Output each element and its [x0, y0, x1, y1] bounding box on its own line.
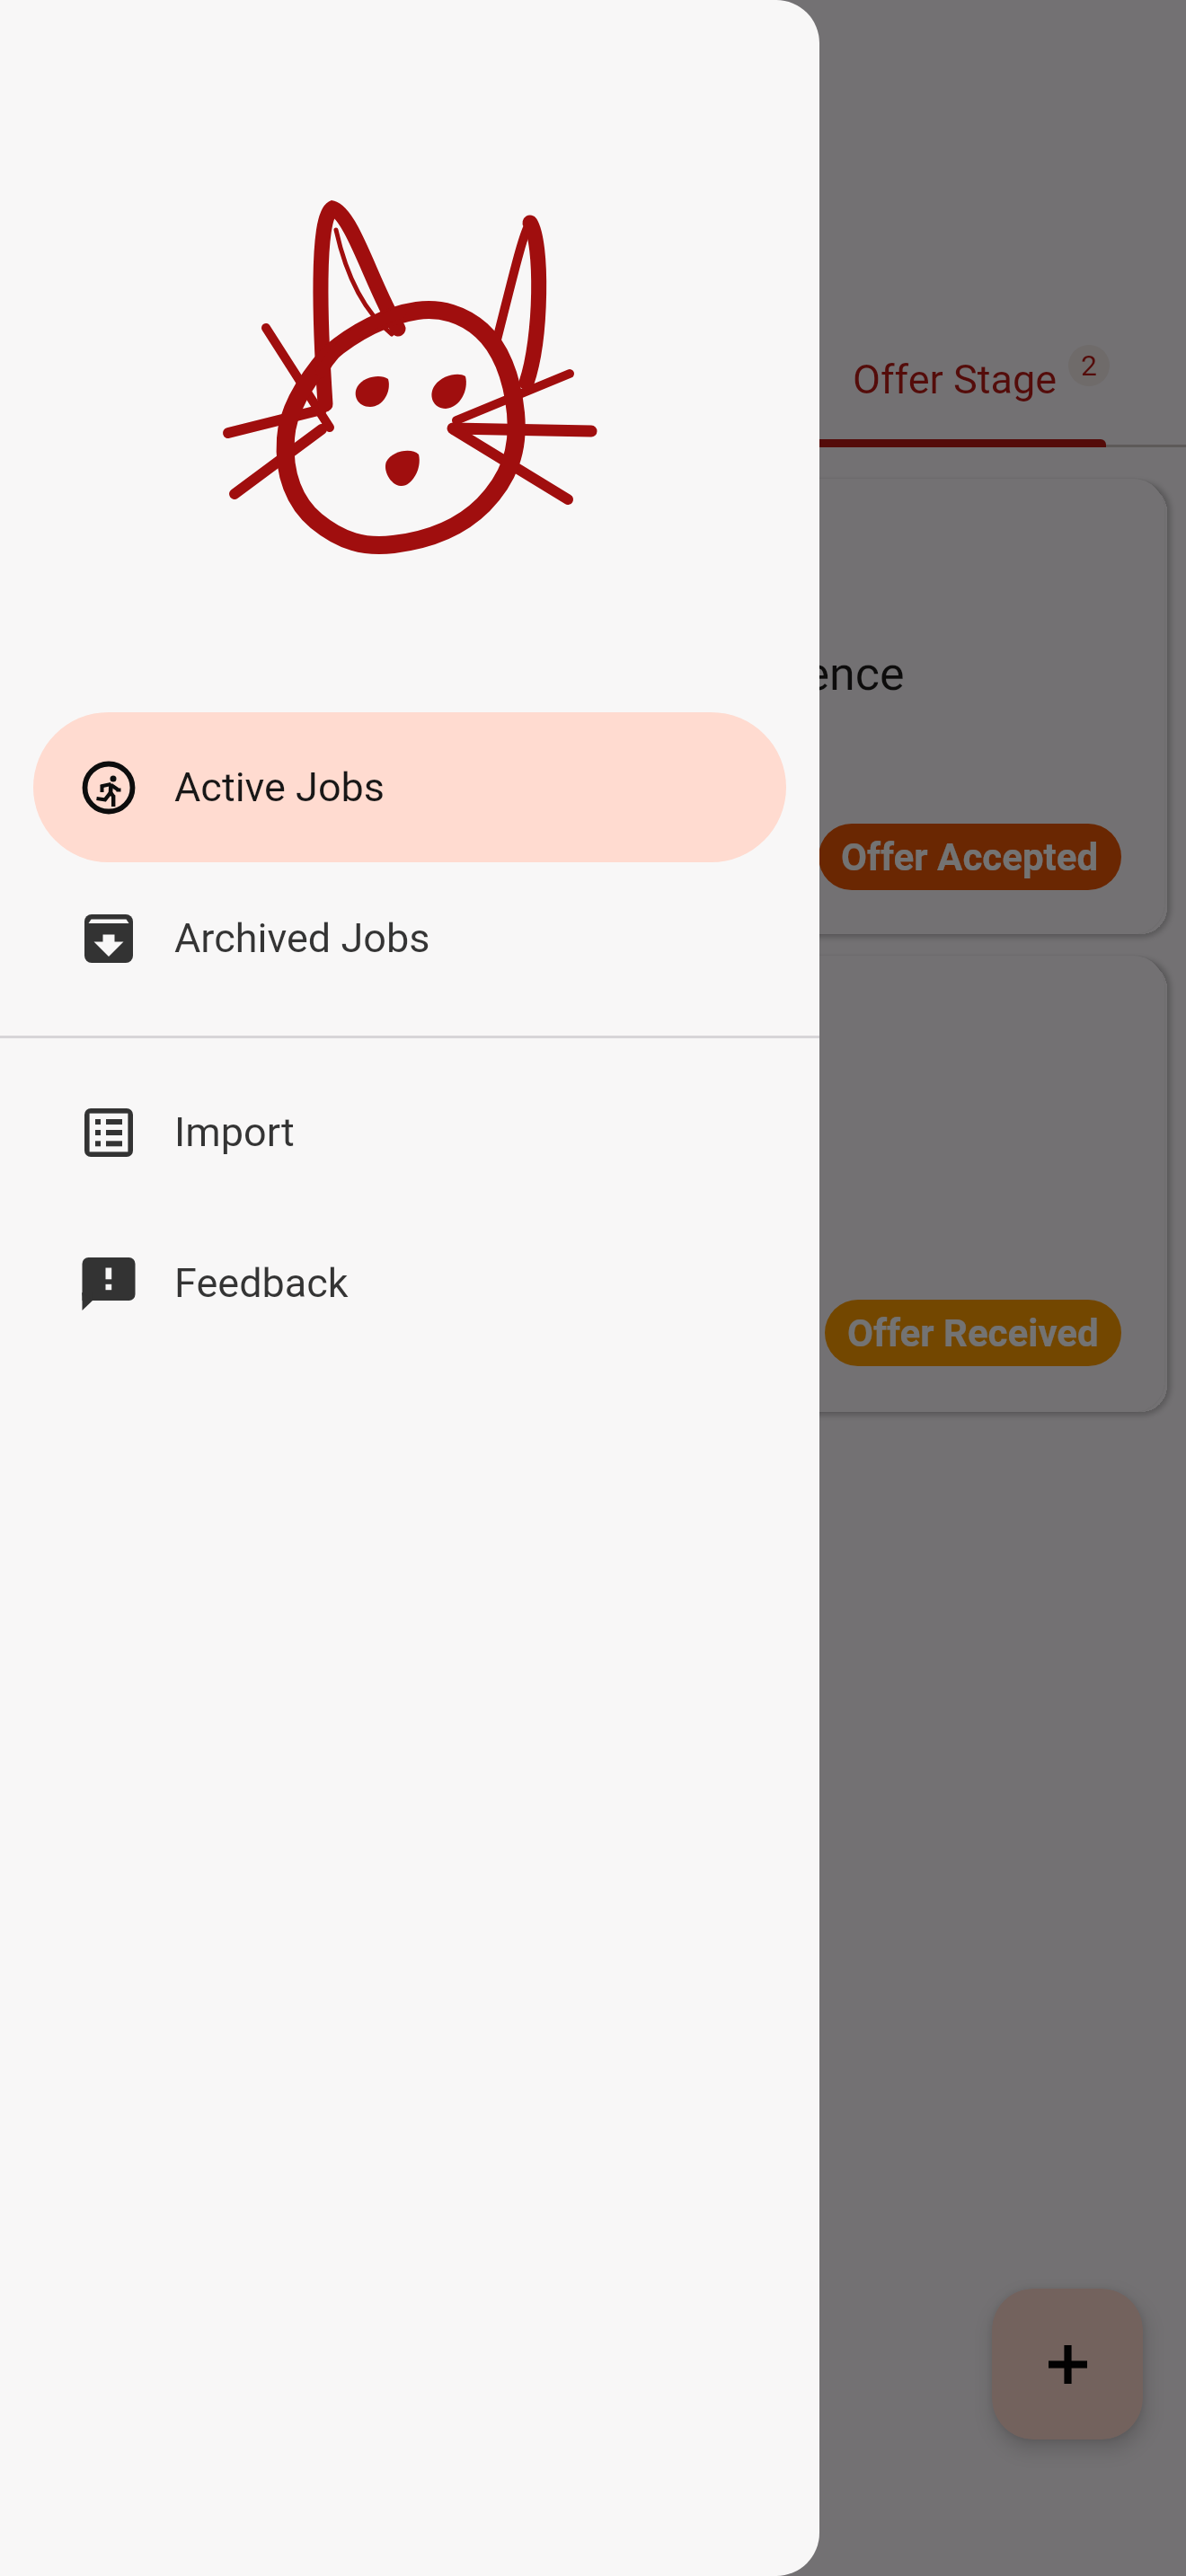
staticText: Feedback	[174, 1259, 349, 1307]
button[interactable]: Senior Software Engineer, Data Science	[43, 479, 1164, 934]
staticText: Interview	[449, 354, 613, 401]
button[interactable]: Offer Stage	[853, 334, 1110, 449]
button[interactable]: Interview	[449, 332, 665, 447]
button[interactable]: Active Jobs	[33, 712, 786, 862]
staticText: Archived Jobs	[174, 914, 430, 962]
staticText: Platform Engineer	[92, 1124, 466, 1178]
staticText: Import	[174, 1108, 295, 1156]
staticText: Offer Stage	[853, 356, 1058, 403]
button[interactable]: Add job	[992, 2289, 1143, 2439]
staticText: 2	[1081, 348, 1097, 383]
button[interactable]: Archived Jobs	[33, 863, 786, 1013]
button[interactable]: Applied	[117, 332, 305, 447]
staticText: Active Jobs	[174, 763, 385, 811]
button[interactable]: Feedback	[33, 1208, 786, 1358]
staticText: Offer Accepted	[841, 835, 1099, 879]
staticText: Senior Software Engineer, Data Science	[92, 647, 905, 701]
staticText: 5	[277, 347, 293, 381]
button[interactable]: Import	[33, 1057, 786, 1207]
staticText: Offer Received	[847, 1311, 1099, 1355]
button[interactable]: Platform Engineer	[43, 956, 1164, 1412]
